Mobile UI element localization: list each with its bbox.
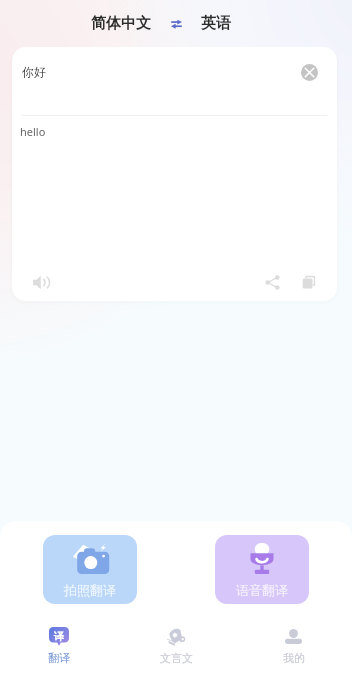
staticText: 语音翻译 [236,582,288,598]
staticText: 英语 [201,14,231,33]
staticText: hello [20,124,46,139]
button[interactable]: Clear text [301,64,318,81]
staticText: 你好 [22,64,46,79]
button[interactable]: 我的 [235,627,352,665]
button[interactable]: 文言文 [118,627,235,665]
staticText: 翻译 [48,651,70,665]
button[interactable]: 语音翻译 [215,535,309,604]
button[interactable]: 英语 [198,8,234,39]
button[interactable]: 拍照翻译 [43,535,137,604]
staticText: 拍照翻译 [64,582,116,598]
staticText: 简体中文 [91,14,151,33]
button[interactable]: 简体中文 [88,8,154,39]
button[interactable]: Share [260,270,284,294]
staticText: 文言文 [160,651,193,665]
button[interactable]: Copy [297,270,321,294]
staticText: 我的 [283,651,305,665]
button[interactable]: Swap languages [167,15,185,33]
button[interactable]: 译 [0,627,118,665]
staticText: 译 [54,630,64,643]
button[interactable]: Play pronunciation [29,270,53,294]
